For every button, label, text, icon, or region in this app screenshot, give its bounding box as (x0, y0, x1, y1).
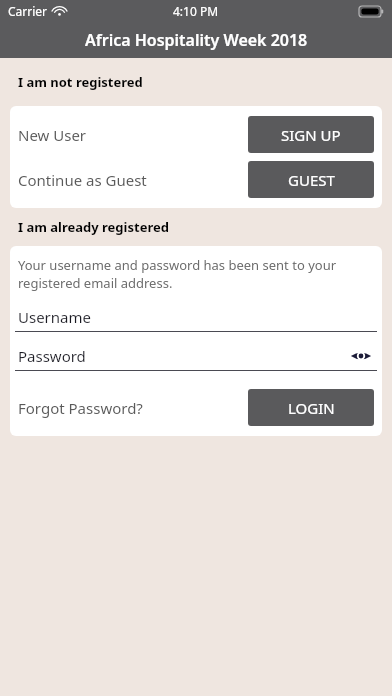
staticText: SIGN UP (281, 125, 341, 145)
button[interactable]: SIGN UP (248, 116, 374, 153)
button[interactable]: Forgot Password? (18, 398, 143, 418)
staticText: Continue as Guest (18, 170, 147, 190)
staticText: Password (18, 346, 86, 366)
staticText: 4:10 PM (173, 3, 219, 19)
staticText: I am already registered (18, 218, 169, 236)
staticText: New User (18, 125, 87, 145)
button[interactable]: Show password (348, 344, 374, 368)
button[interactable]: Username (10, 306, 382, 328)
button[interactable]: New User (18, 125, 87, 145)
staticText: Carrier (8, 3, 48, 19)
staticText: LOGIN (288, 398, 335, 418)
button[interactable]: Password (10, 344, 382, 368)
button[interactable]: LOGIN (248, 389, 374, 426)
staticText: GUEST (288, 170, 335, 190)
button[interactable]: GUEST (248, 161, 374, 198)
button[interactable]: Continue as Guest (18, 170, 147, 190)
staticText: Forgot Password? (18, 398, 143, 418)
staticText: Your username and password has been sent… (18, 256, 374, 292)
staticText: I am not registered (18, 73, 143, 91)
staticText: Africa Hospitality Week 2018 (85, 29, 308, 51)
staticText: Username (18, 307, 91, 327)
